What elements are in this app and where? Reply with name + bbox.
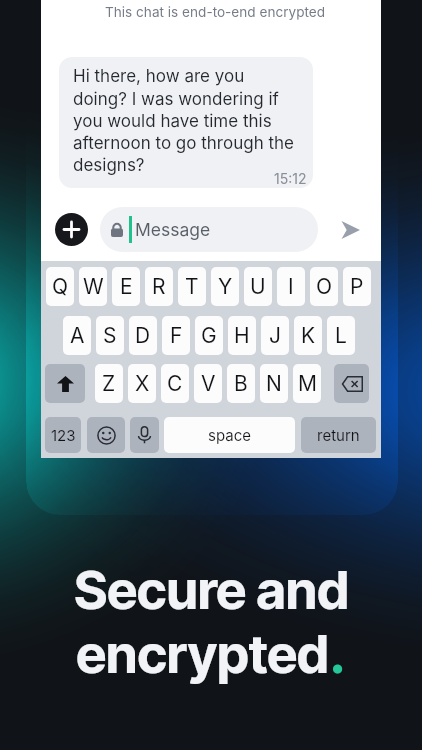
staticText: Y	[218, 274, 233, 299]
button[interactable]: Q	[46, 267, 74, 306]
button[interactable]: return	[301, 417, 376, 453]
staticText: encrypted	[76, 622, 329, 686]
button[interactable]: Message	[100, 207, 318, 252]
button[interactable]: R	[145, 267, 173, 306]
staticText: B	[234, 371, 248, 396]
staticText: O	[316, 274, 333, 299]
staticText: Q	[52, 274, 69, 299]
staticText: C	[167, 371, 183, 396]
staticText: This chat is end-to-end encrypted	[105, 4, 326, 20]
button[interactable]: S	[96, 316, 124, 355]
staticText: L	[335, 323, 347, 348]
staticText: N	[266, 371, 282, 396]
staticText: A	[70, 323, 85, 348]
button[interactable]: H	[228, 316, 256, 355]
staticText: J	[269, 323, 281, 348]
staticText: space	[208, 426, 251, 444]
staticText: return	[317, 426, 360, 444]
staticText: H	[234, 323, 250, 348]
button[interactable]: Backspace	[334, 364, 369, 403]
button[interactable]: F	[162, 316, 190, 355]
button[interactable]: Emoji	[87, 417, 125, 453]
button[interactable]: space	[164, 417, 295, 453]
button[interactable]: Y	[211, 267, 239, 306]
button[interactable]: P	[343, 267, 371, 306]
button[interactable]: C	[161, 364, 189, 403]
button[interactable]: O	[310, 267, 338, 306]
button[interactable]: Z	[95, 364, 123, 403]
staticText: U	[250, 274, 266, 299]
button[interactable]: I	[277, 267, 305, 306]
button[interactable]: V	[194, 364, 222, 403]
button[interactable]: K	[294, 316, 322, 355]
staticText: Z	[102, 371, 116, 396]
staticText: 15:12	[274, 170, 307, 187]
button[interactable]: T	[178, 267, 206, 306]
staticText: F	[170, 323, 183, 348]
button[interactable]: L	[327, 316, 355, 355]
button[interactable]: A	[63, 316, 91, 355]
staticText: W	[83, 274, 104, 299]
staticText: R	[152, 274, 166, 299]
button[interactable]: B	[227, 364, 255, 403]
button[interactable]: Add attachment	[55, 213, 88, 246]
staticText: 123	[51, 426, 76, 444]
staticText: S	[103, 323, 117, 348]
staticText: E	[120, 274, 133, 299]
button[interactable]: Send	[336, 216, 364, 244]
staticText: G	[201, 323, 217, 348]
staticText: .	[329, 622, 346, 686]
button[interactable]: M	[293, 364, 321, 403]
button[interactable]: X	[128, 364, 156, 403]
button[interactable]: N	[260, 364, 288, 403]
staticText: Message	[135, 219, 211, 240]
button[interactable]: Numbers	[45, 417, 81, 453]
staticText: Hi there, how are you doing? I was wonde…	[73, 66, 297, 175]
staticText: V	[201, 371, 216, 396]
button[interactable]: Dictation	[130, 417, 159, 453]
staticText: P	[350, 274, 364, 299]
button[interactable]: U	[244, 267, 272, 306]
staticText: Secure and	[74, 558, 349, 622]
button[interactable]: E	[112, 267, 140, 306]
staticText: I	[288, 274, 294, 299]
staticText: T	[185, 274, 199, 299]
button[interactable]: W	[79, 267, 107, 306]
staticText: K	[301, 323, 316, 348]
button[interactable]: Shift	[45, 364, 85, 403]
button[interactable]: G	[195, 316, 223, 355]
button[interactable]: J	[261, 316, 289, 355]
staticText: D	[135, 323, 151, 348]
staticText: X	[135, 371, 150, 396]
staticText: M	[298, 371, 317, 396]
button[interactable]: D	[129, 316, 157, 355]
